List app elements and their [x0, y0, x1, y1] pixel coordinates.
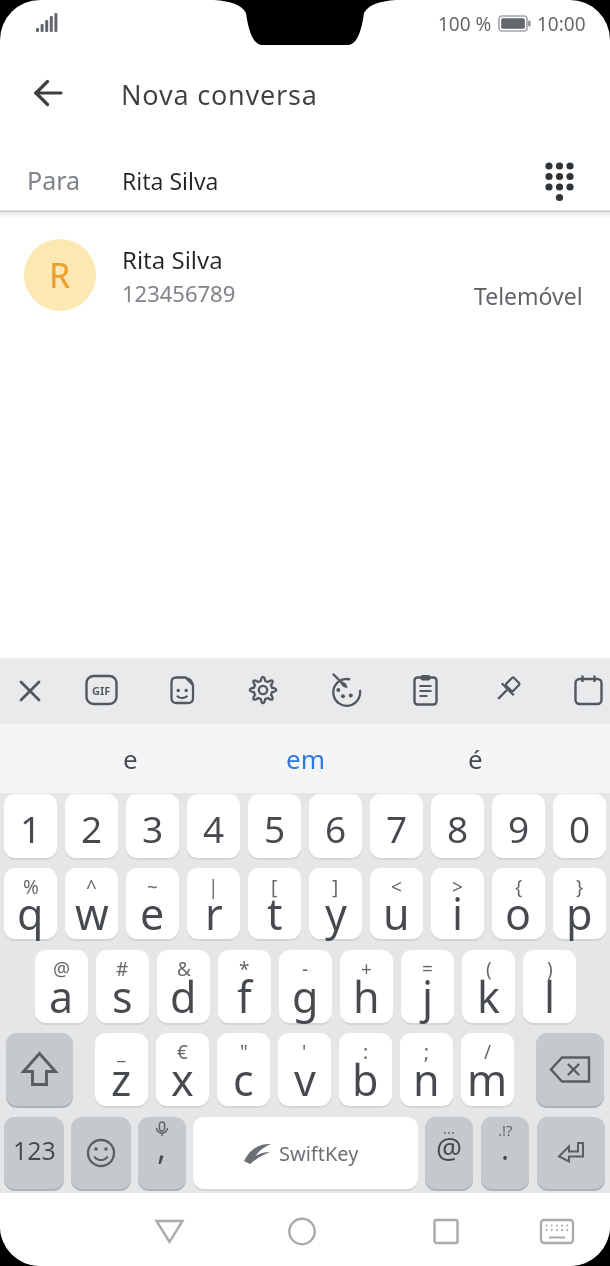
button[interactable] [426, 1211, 466, 1251]
button[interactable] [339, 1033, 392, 1106]
staticText: @ [53, 956, 71, 982]
button[interactable] [193, 1117, 418, 1189]
button[interactable] [523, 950, 576, 1023]
button[interactable] [96, 950, 149, 1023]
button[interactable] [126, 868, 179, 939]
staticText: 4 [203, 803, 225, 853]
button[interactable]: é [405, 724, 545, 793]
button[interactable] [126, 794, 179, 858]
button[interactable] [248, 868, 301, 939]
button[interactable] [553, 794, 606, 858]
staticText: 2 [81, 803, 103, 853]
staticText: j [422, 967, 434, 1026]
button[interactable] [217, 1033, 270, 1106]
button[interactable] [537, 1117, 605, 1189]
staticText: ; [424, 1039, 430, 1065]
button[interactable] [6, 1033, 73, 1106]
staticText: Para [27, 163, 81, 197]
button[interactable] [157, 950, 210, 1023]
button[interactable] [401, 950, 454, 1023]
button[interactable] [309, 794, 362, 858]
button[interactable] [537, 1211, 577, 1251]
button[interactable] [431, 794, 484, 858]
staticText: 9 [508, 803, 530, 853]
button[interactable] [279, 950, 332, 1023]
button[interactable] [4, 868, 57, 939]
button[interactable]: R [0, 226, 610, 324]
staticText: Telemóvel [474, 280, 583, 311]
button[interactable] [572, 674, 605, 706]
button[interactable] [65, 868, 118, 939]
button[interactable] [187, 868, 240, 939]
staticText: o [505, 884, 532, 943]
staticText: é [468, 741, 483, 776]
button[interactable] [431, 868, 484, 939]
staticText: > [452, 874, 463, 900]
button[interactable]: e [60, 724, 200, 793]
button[interactable]: em [235, 724, 375, 793]
staticText: t [267, 884, 283, 943]
staticText: GIF [92, 683, 111, 698]
button[interactable] [138, 1117, 186, 1189]
button[interactable] [218, 950, 271, 1023]
button[interactable] [65, 794, 118, 858]
staticText: z [111, 1050, 132, 1109]
staticText: 0 [569, 803, 591, 853]
button[interactable] [156, 1033, 209, 1106]
button[interactable] [35, 950, 88, 1023]
staticText: 10:00 [537, 11, 586, 35]
button[interactable]: Para [0, 148, 610, 210]
staticText: .!? [498, 1120, 513, 1140]
button[interactable] [490, 674, 524, 706]
staticText: R [49, 252, 71, 298]
staticText: k [477, 967, 500, 1026]
button[interactable] [246, 674, 279, 706]
button[interactable] [71, 1117, 131, 1189]
staticText: 7 [386, 803, 408, 853]
staticText: ^ [86, 874, 97, 900]
staticText: 123 [13, 1133, 56, 1167]
staticText: [ [271, 874, 278, 900]
button[interactable] [278, 1033, 331, 1106]
button[interactable] [370, 868, 423, 939]
button[interactable] [492, 794, 545, 858]
staticText: y [325, 884, 347, 943]
button[interactable] [187, 794, 240, 858]
button[interactable] [248, 794, 301, 858]
button[interactable] [409, 674, 442, 706]
staticText: ... [443, 1118, 456, 1138]
button[interactable] [282, 1211, 322, 1251]
button[interactable] [4, 794, 57, 858]
staticText: { [515, 874, 523, 900]
button[interactable] [149, 1211, 189, 1251]
staticText: # [116, 956, 129, 982]
button[interactable] [166, 674, 199, 706]
staticText: + [361, 956, 372, 982]
button[interactable] [462, 950, 515, 1023]
staticText: } [576, 874, 584, 900]
button[interactable] [400, 1033, 453, 1106]
button[interactable] [481, 1117, 529, 1189]
button[interactable] [425, 1117, 473, 1189]
button[interactable] [14, 675, 46, 707]
button[interactable]: GIF [85, 674, 118, 706]
button[interactable] [461, 1033, 514, 1106]
button[interactable] [327, 674, 361, 706]
button[interactable] [536, 1033, 604, 1106]
staticText: r [205, 884, 223, 943]
button[interactable] [553, 868, 606, 939]
staticText: c [233, 1050, 254, 1109]
button[interactable] [4, 1117, 64, 1189]
button[interactable] [309, 868, 362, 939]
button[interactable] [24, 69, 72, 117]
staticText: v [294, 1050, 316, 1109]
staticText: 100 % [438, 11, 492, 35]
button[interactable] [492, 868, 545, 939]
button[interactable] [340, 950, 393, 1023]
staticText: | [208, 874, 219, 900]
button[interactable] [370, 794, 423, 858]
staticText: < [391, 874, 402, 900]
staticText: em [286, 741, 325, 776]
button[interactable] [95, 1033, 148, 1106]
staticText: l [544, 967, 556, 1026]
